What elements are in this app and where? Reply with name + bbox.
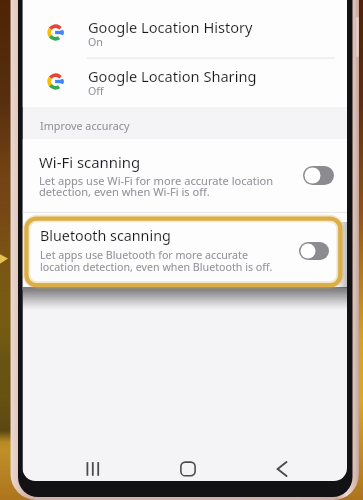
staticText: Let apps use Bluetooth for more accurate… xyxy=(40,248,273,274)
staticText: Google Location Sharing xyxy=(88,66,257,86)
button[interactable] xyxy=(23,213,348,290)
button[interactable] xyxy=(23,58,348,107)
staticText: Wi-Fi scanning xyxy=(39,152,141,172)
staticText: On xyxy=(88,35,103,49)
button[interactable]: Home xyxy=(172,453,204,485)
button[interactable]: Recent apps xyxy=(77,453,109,485)
button[interactable] xyxy=(23,139,348,212)
staticText: Let apps use Wi-Fi for more accurate loc… xyxy=(39,173,274,200)
staticText: Google Location History xyxy=(88,17,253,37)
staticText: Bluetooth scanning xyxy=(40,226,171,245)
button[interactable] xyxy=(23,9,348,58)
button[interactable]: Back xyxy=(266,453,298,485)
staticText: Off xyxy=(88,84,104,98)
staticText: Improve accuracy xyxy=(40,118,130,133)
